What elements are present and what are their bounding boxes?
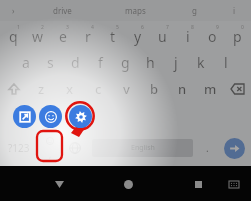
staticText: 7 bbox=[166, 24, 169, 31]
button[interactable]: l bbox=[213, 49, 238, 75]
button[interactable]: Keyboard bbox=[223, 173, 245, 195]
staticText: l bbox=[224, 53, 228, 72]
button[interactable]: 4 bbox=[75, 23, 100, 49]
staticText: › bbox=[12, 5, 15, 16]
staticText: w bbox=[32, 27, 44, 46]
button[interactable]: Home bbox=[115, 171, 141, 197]
staticText: b bbox=[150, 80, 159, 98]
button[interactable]: Settings bbox=[69, 105, 92, 128]
button[interactable]: English bbox=[92, 139, 193, 157]
staticText: f bbox=[98, 53, 103, 72]
staticText: ?123 bbox=[8, 141, 30, 155]
button[interactable]: 9 bbox=[200, 23, 225, 49]
staticText: p bbox=[233, 27, 242, 46]
staticText: maps bbox=[125, 5, 146, 16]
staticText: 9 bbox=[216, 24, 219, 31]
staticText: i bbox=[233, 5, 236, 16]
button[interactable]: 6 bbox=[125, 23, 150, 49]
button[interactable]: 1 bbox=[1, 23, 25, 49]
button[interactable]: Emoji and comma bbox=[38, 134, 62, 162]
staticText: drive bbox=[53, 5, 72, 16]
button[interactable]: drive bbox=[26, 0, 99, 21]
button[interactable]: 8 bbox=[175, 23, 200, 49]
button[interactable]: f bbox=[88, 49, 113, 75]
staticText: s bbox=[47, 53, 54, 72]
staticText: 2 bbox=[41, 24, 44, 31]
staticText: o bbox=[208, 27, 217, 46]
button[interactable]: Clipboard bbox=[13, 105, 36, 128]
staticText: r bbox=[85, 27, 91, 46]
button[interactable]: ?123 bbox=[0, 134, 38, 162]
button[interactable]: d bbox=[63, 49, 88, 75]
button[interactable]: Back bbox=[46, 171, 72, 197]
staticText: c bbox=[95, 80, 102, 98]
button[interactable]: v bbox=[112, 75, 140, 102]
staticText: 4 bbox=[91, 24, 94, 31]
button[interactable]: k bbox=[188, 49, 213, 75]
button[interactable]: m bbox=[196, 75, 224, 102]
button[interactable]: 0 bbox=[225, 23, 250, 49]
staticText: 3 bbox=[66, 24, 69, 31]
button[interactable]: z bbox=[27, 75, 56, 102]
button[interactable]: h bbox=[138, 49, 163, 75]
staticText: j bbox=[174, 53, 178, 72]
staticText: g bbox=[192, 5, 197, 16]
staticText: i bbox=[186, 27, 190, 46]
button[interactable]: x bbox=[56, 75, 84, 102]
staticText: x bbox=[66, 80, 74, 98]
staticText: , bbox=[49, 149, 52, 160]
staticText: h bbox=[146, 53, 155, 72]
button[interactable]: 2 bbox=[25, 23, 50, 49]
staticText: . bbox=[206, 141, 209, 155]
button[interactable]: j bbox=[163, 49, 188, 75]
button[interactable]: Change language bbox=[62, 134, 88, 162]
staticText: e bbox=[59, 27, 67, 46]
staticText: q bbox=[9, 27, 18, 46]
staticText: t bbox=[110, 27, 116, 46]
staticText: n bbox=[178, 80, 187, 98]
staticText: u bbox=[158, 27, 167, 46]
button[interactable]: g bbox=[172, 0, 217, 21]
staticText: 0 bbox=[241, 24, 244, 31]
staticText: m bbox=[204, 80, 217, 98]
staticText: a bbox=[22, 53, 30, 72]
button[interactable]: Backspace bbox=[224, 75, 251, 102]
staticText: d bbox=[71, 53, 80, 72]
staticText: 8 bbox=[191, 24, 194, 31]
button[interactable]: 7 bbox=[150, 23, 175, 49]
button[interactable]: Shift bbox=[0, 75, 27, 102]
staticText: 5 bbox=[116, 24, 119, 31]
staticText: k bbox=[197, 53, 205, 72]
button[interactable]: maps bbox=[99, 0, 172, 21]
button[interactable]: s bbox=[38, 49, 63, 75]
button[interactable]: Recents bbox=[185, 171, 211, 197]
staticText: 6 bbox=[141, 24, 144, 31]
staticText: English bbox=[131, 143, 155, 153]
button[interactable]: 3 bbox=[50, 23, 75, 49]
button[interactable]: 5 bbox=[100, 23, 125, 49]
button[interactable]: g bbox=[113, 49, 138, 75]
button[interactable]: b bbox=[140, 75, 168, 102]
staticText: g bbox=[121, 53, 130, 72]
button[interactable]: Emoji bbox=[39, 105, 62, 128]
button[interactable]: Enter bbox=[217, 134, 251, 162]
staticText: v bbox=[123, 80, 130, 98]
staticText: z bbox=[38, 80, 45, 98]
button[interactable]: c bbox=[84, 75, 112, 102]
button[interactable]: a bbox=[13, 49, 38, 75]
button[interactable]: n bbox=[168, 75, 196, 102]
staticText: 1 bbox=[17, 24, 20, 31]
staticText: y bbox=[134, 27, 142, 46]
